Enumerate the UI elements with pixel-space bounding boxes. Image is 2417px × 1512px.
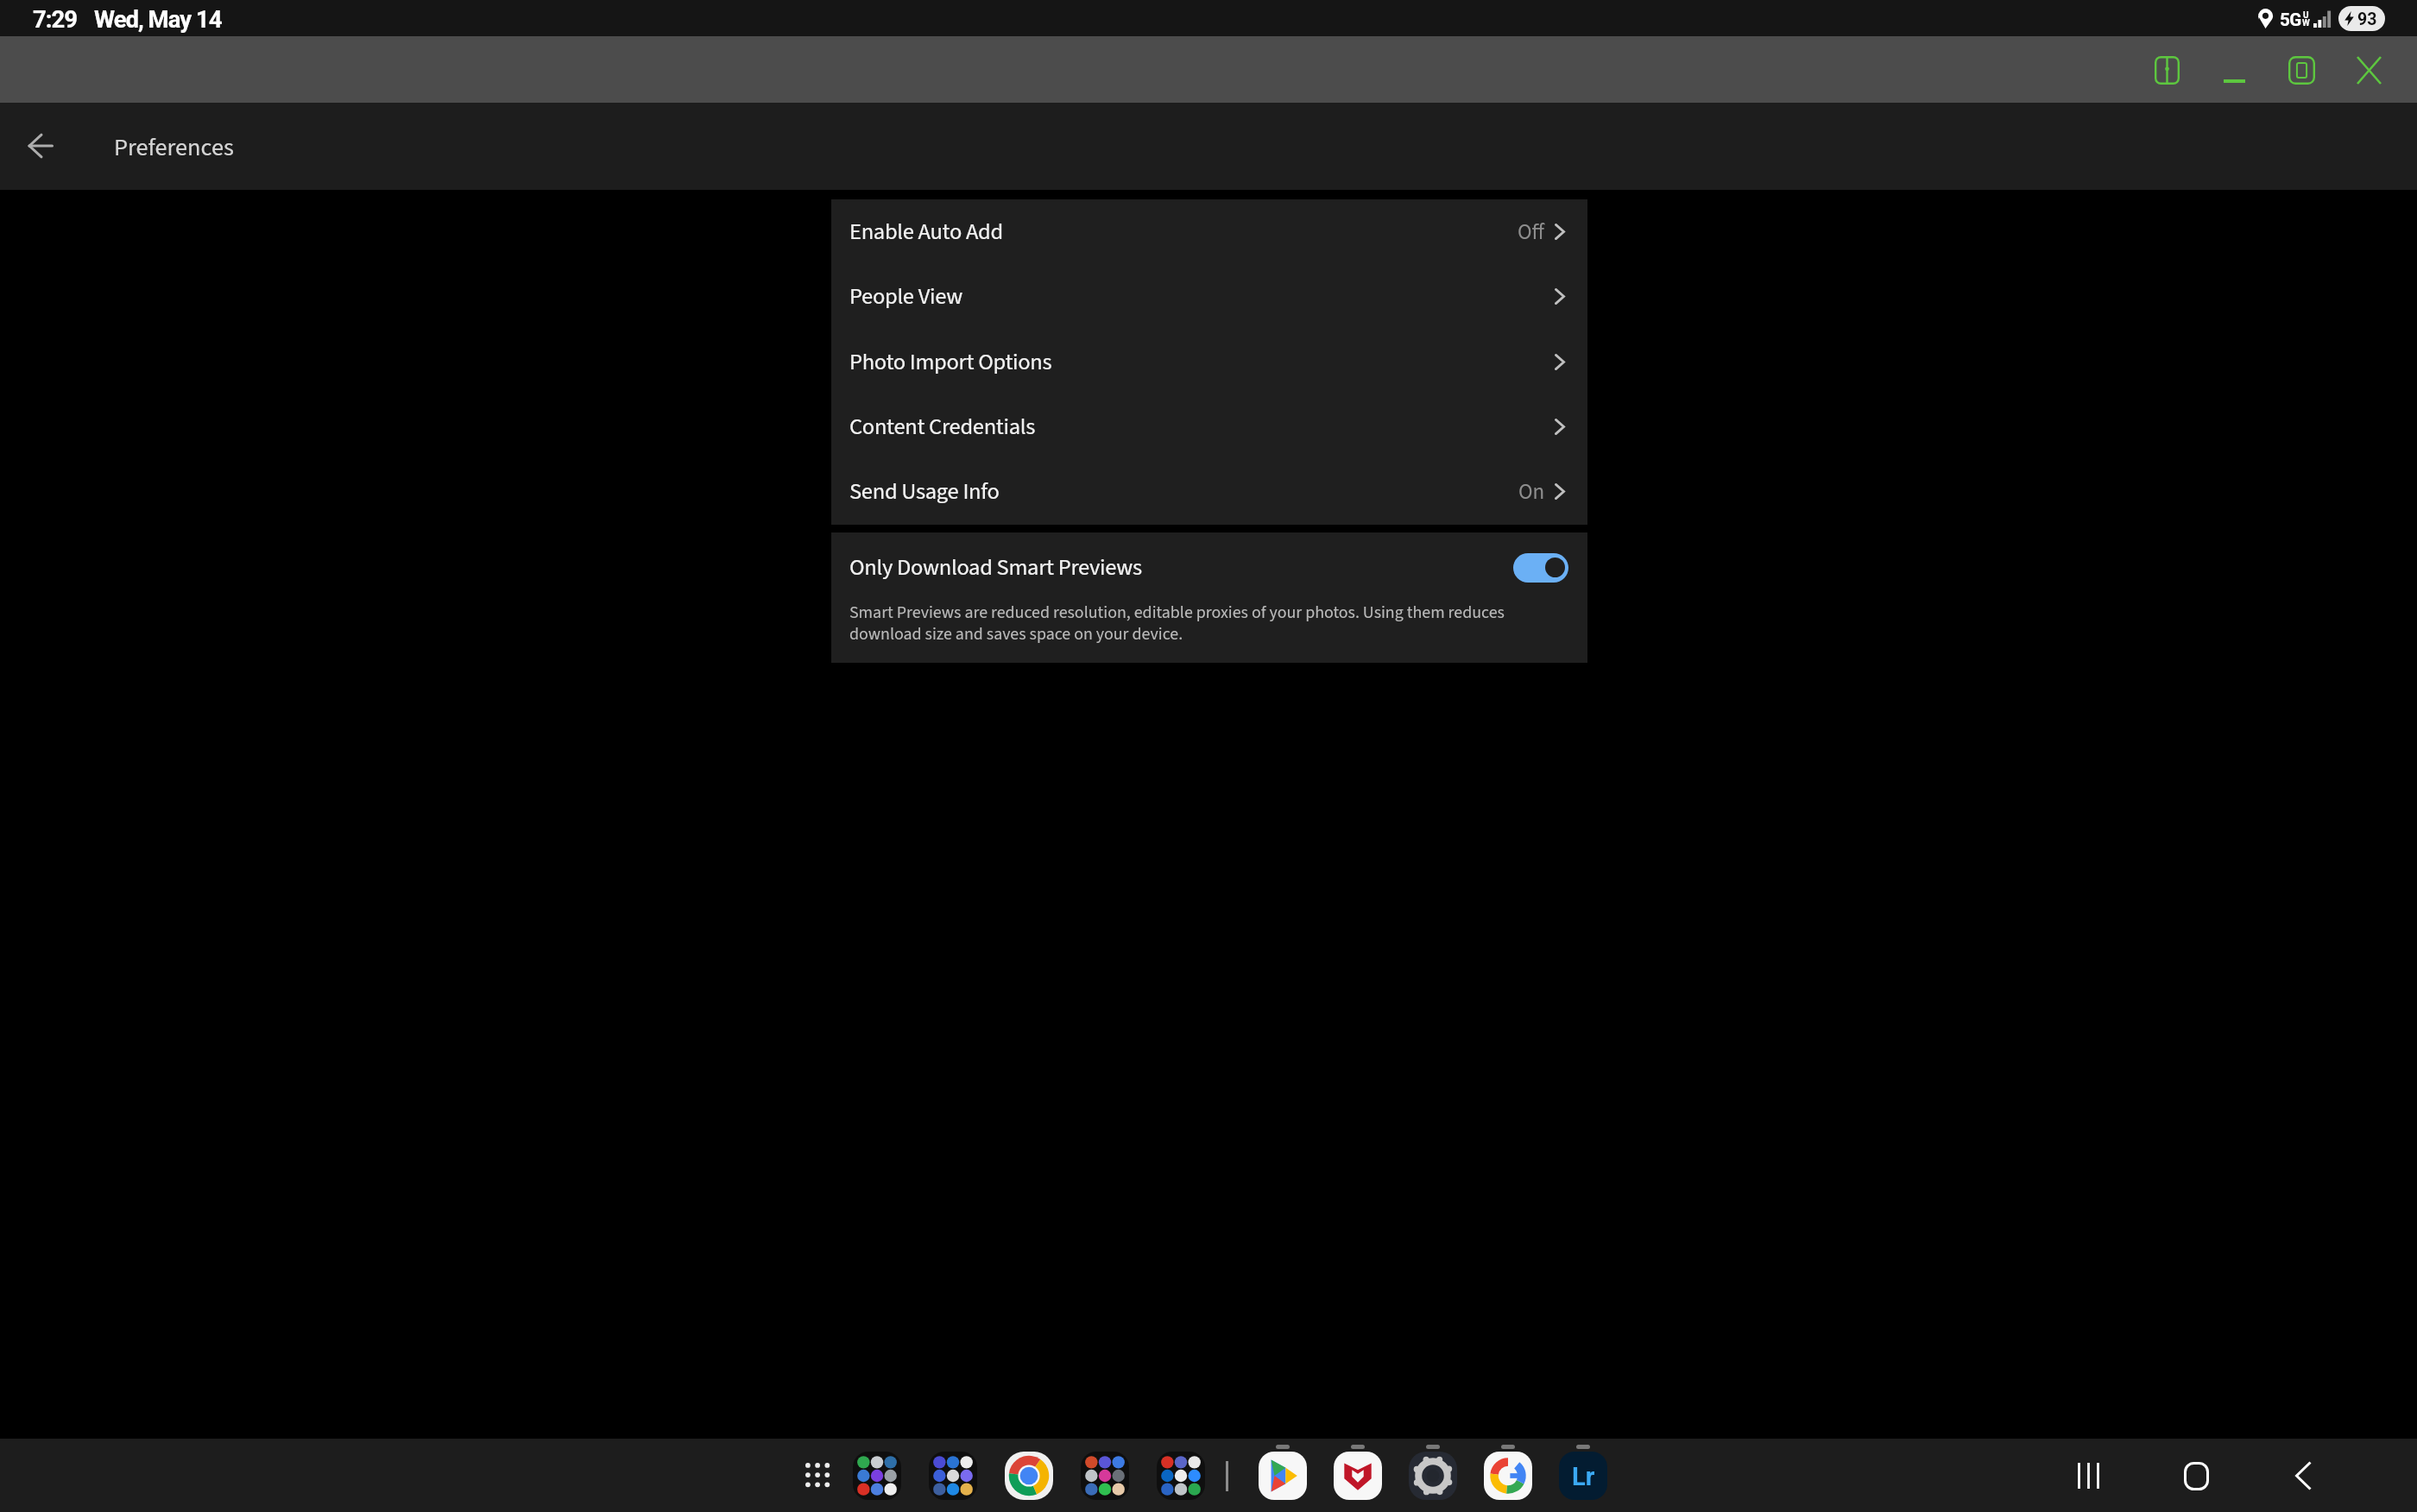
button[interactable]: Lightroom [1559, 1452, 1607, 1500]
staticText: Photo Import Options [849, 346, 1052, 379]
button[interactable]: Home [2172, 1452, 2220, 1500]
button[interactable]: App folder [929, 1452, 977, 1500]
button[interactable]: Settings [1409, 1452, 1457, 1500]
button[interactable]: Split screen [2144, 49, 2189, 91]
staticText: Smart Previews are reduced resolution, e… [849, 601, 1505, 625]
button[interactable]: Maximize [2279, 49, 2324, 91]
staticText: U [2303, 10, 2309, 21]
staticText: 5G [2280, 9, 2301, 30]
button[interactable]: Only Download Smart Previews [1513, 553, 1568, 583]
staticText: Preferences [114, 130, 234, 165]
button[interactable]: Content Credentials [831, 394, 1587, 459]
button[interactable]: People View [831, 264, 1587, 329]
staticText: Enable Auto Add [849, 216, 1003, 249]
staticText: Off [1518, 217, 1545, 248]
staticText: Only Download Smart Previews [849, 551, 1142, 584]
button[interactable]: Play Store [1259, 1452, 1307, 1500]
button[interactable]: Back [2279, 1452, 2327, 1500]
button[interactable]: Chrome [1005, 1452, 1053, 1500]
button[interactable]: App folder [853, 1452, 901, 1500]
staticText: download size and saves space on your de… [849, 622, 1183, 646]
staticText: Send Usage Info [849, 476, 1000, 508]
staticText: People View [849, 280, 962, 313]
staticText: Wed, May 14 [94, 5, 222, 33]
staticText: 93 [2357, 9, 2377, 29]
button[interactable]: App folder [1081, 1452, 1129, 1500]
staticText: W [2302, 18, 2310, 28]
button[interactable]: Send Usage Info [831, 459, 1587, 524]
staticText: Content Credentials [849, 411, 1036, 444]
button[interactable]: Recents [2065, 1452, 2113, 1500]
button[interactable]: Google [1484, 1452, 1532, 1500]
staticText: Lr [1572, 1462, 1595, 1491]
button[interactable]: Back [12, 118, 67, 173]
staticText: 7:29 [33, 5, 78, 33]
button[interactable]: All apps [793, 1452, 842, 1500]
button[interactable]: Enable Auto Add [831, 199, 1587, 264]
button[interactable]: Minimize [2212, 49, 2256, 91]
button[interactable]: Close [2346, 49, 2391, 91]
button[interactable]: Photo Import Options [831, 330, 1587, 394]
button[interactable]: McAfee [1334, 1452, 1382, 1500]
staticText: On [1518, 476, 1545, 507]
button[interactable]: App folder [1157, 1452, 1205, 1500]
